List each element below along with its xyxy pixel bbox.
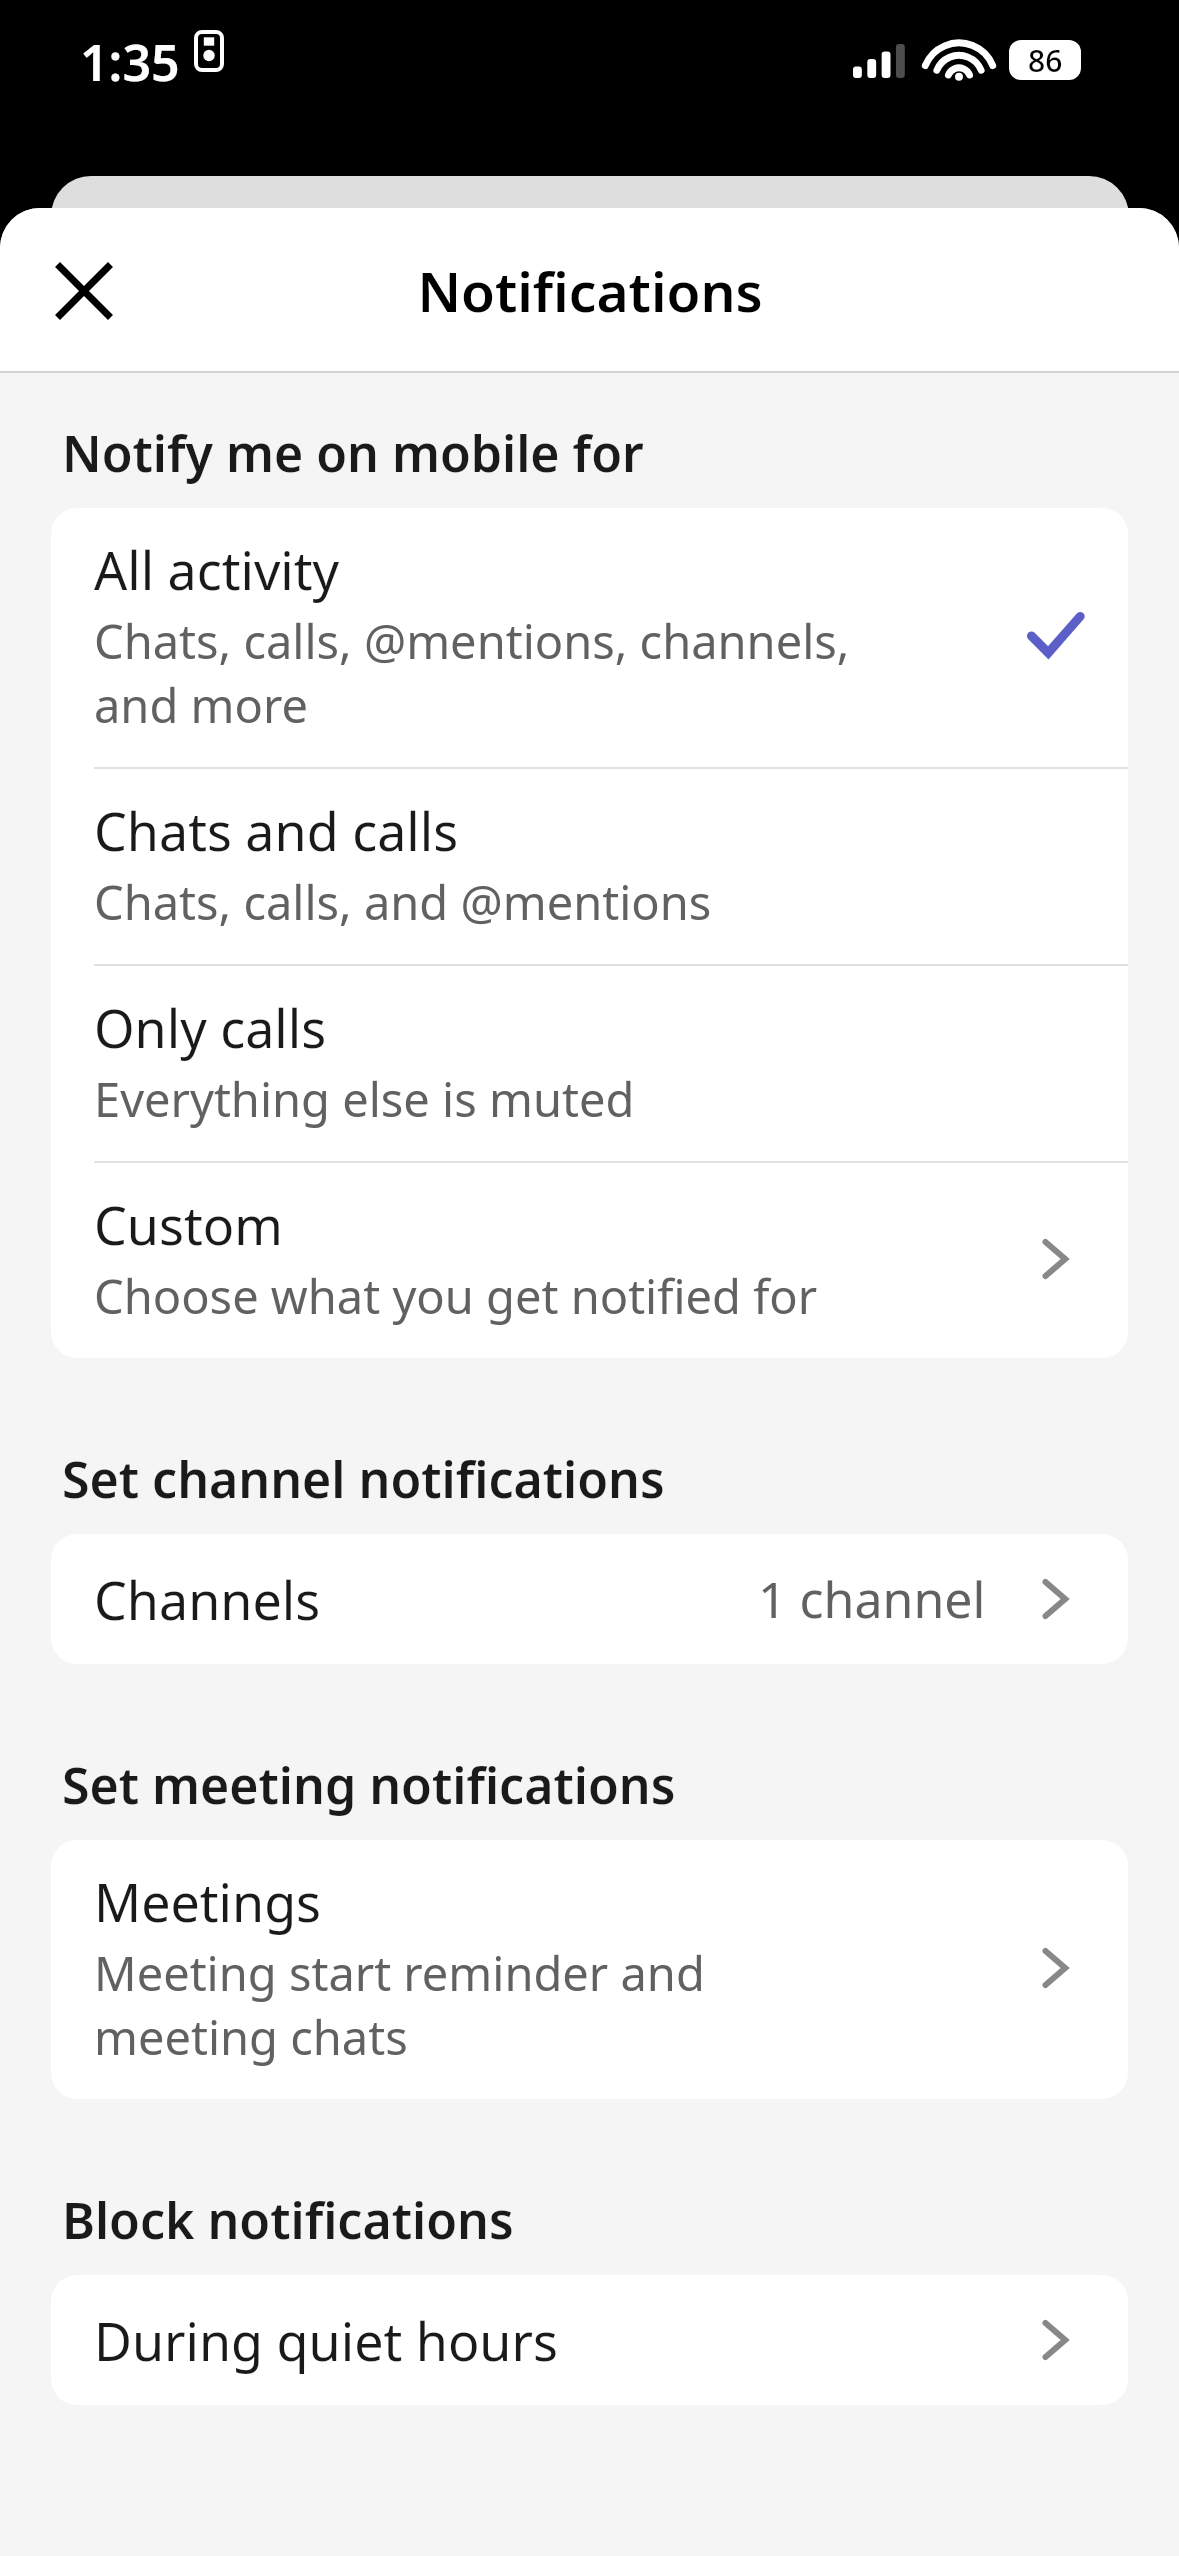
button[interactable]: All activity bbox=[51, 508, 1128, 767]
staticText: During quiet hours bbox=[94, 2305, 558, 2376]
staticText: Everything else is muted bbox=[94, 1067, 635, 1131]
button[interactable]: Meetings bbox=[51, 1840, 1128, 2099]
button[interactable]: Close bbox=[34, 241, 134, 341]
staticText: Notify me on mobile for bbox=[62, 419, 644, 487]
staticText: All activity bbox=[94, 534, 340, 605]
staticText: 1 channel bbox=[758, 1565, 986, 1633]
staticText: Chats, calls, @mentions, channels, and m… bbox=[94, 609, 850, 737]
staticText: 86 bbox=[1028, 40, 1063, 80]
button[interactable]: During quiet hours bbox=[51, 2275, 1128, 2405]
staticText: Block notifications bbox=[62, 2186, 514, 2254]
staticText: Notifications bbox=[417, 253, 763, 328]
staticText: Set channel notifications bbox=[62, 1445, 665, 1513]
staticText: Channels bbox=[94, 1564, 321, 1635]
staticText: Chats and calls bbox=[94, 795, 459, 866]
button[interactable]: Custom bbox=[51, 1163, 1128, 1358]
button[interactable]: Channels bbox=[51, 1534, 1128, 1664]
staticText: Choose what you get notified for bbox=[94, 1264, 818, 1328]
staticText: Custom bbox=[94, 1189, 283, 1260]
staticText: Meetings bbox=[94, 1866, 322, 1937]
staticText: Set meeting notifications bbox=[62, 1751, 676, 1819]
staticText: Meeting start reminder and meeting chats bbox=[94, 1941, 705, 2069]
button[interactable]: Chats and calls bbox=[51, 769, 1128, 964]
staticText: Chats, calls, and @mentions bbox=[94, 870, 712, 934]
button[interactable]: Only calls bbox=[51, 966, 1128, 1161]
staticText: 1:35 bbox=[80, 28, 180, 96]
staticText: Only calls bbox=[94, 992, 327, 1063]
